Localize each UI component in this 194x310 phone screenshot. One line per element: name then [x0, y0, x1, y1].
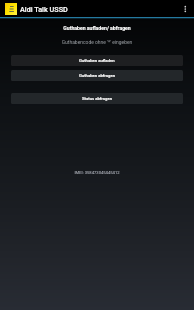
staticText: Status abfragen	[82, 96, 112, 101]
button[interactable]: Guthaben aufladen	[11, 55, 183, 66]
staticText: Aldi Talk USSD	[20, 5, 68, 13]
staticText: Guthaben aufladen	[79, 58, 115, 63]
staticText: Guthaben abfragen	[79, 73, 116, 78]
staticText: Guthabencode ohne '*' eingeben	[0, 39, 194, 45]
button[interactable]: More options	[177, 0, 194, 17]
staticText: IMEI: 358473045445412	[0, 170, 194, 175]
button[interactable]: Guthaben abfragen	[11, 70, 183, 81]
button[interactable]: Status abfragen	[11, 93, 183, 104]
staticText: Guthaben aufladen/ abfragen	[0, 25, 194, 31]
